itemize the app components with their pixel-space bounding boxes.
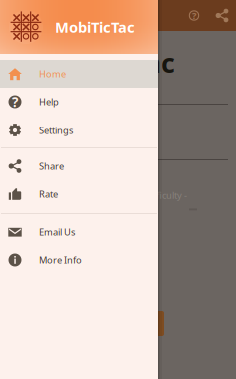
button[interactable]: Start game [64, 311, 164, 336]
staticText: Settings [39, 124, 73, 136]
staticText: Home [39, 68, 66, 80]
staticText: Share [39, 160, 64, 172]
staticText: More Info [39, 254, 82, 266]
button[interactable]: Rate [0, 180, 158, 208]
button[interactable]: Settings [0, 116, 158, 144]
staticText: Help [39, 96, 59, 108]
staticText: MobiTicTac [55, 17, 135, 37]
staticText: ? [12, 93, 18, 111]
button[interactable]: Home [0, 60, 158, 88]
staticText: MobiTicTac [28, 45, 175, 80]
button[interactable]: Email Us [0, 218, 158, 246]
staticText: ? [192, 9, 196, 22]
staticText: Select difficulty - [119, 189, 187, 201]
staticText: Rate [39, 188, 58, 200]
staticText: Email Us [39, 226, 75, 238]
button[interactable]: ? [0, 88, 158, 116]
button[interactable]: More Info [0, 246, 158, 274]
button[interactable]: Share [208, 1, 236, 29]
button[interactable]: Help [180, 1, 208, 29]
button[interactable]: Share [0, 152, 158, 180]
